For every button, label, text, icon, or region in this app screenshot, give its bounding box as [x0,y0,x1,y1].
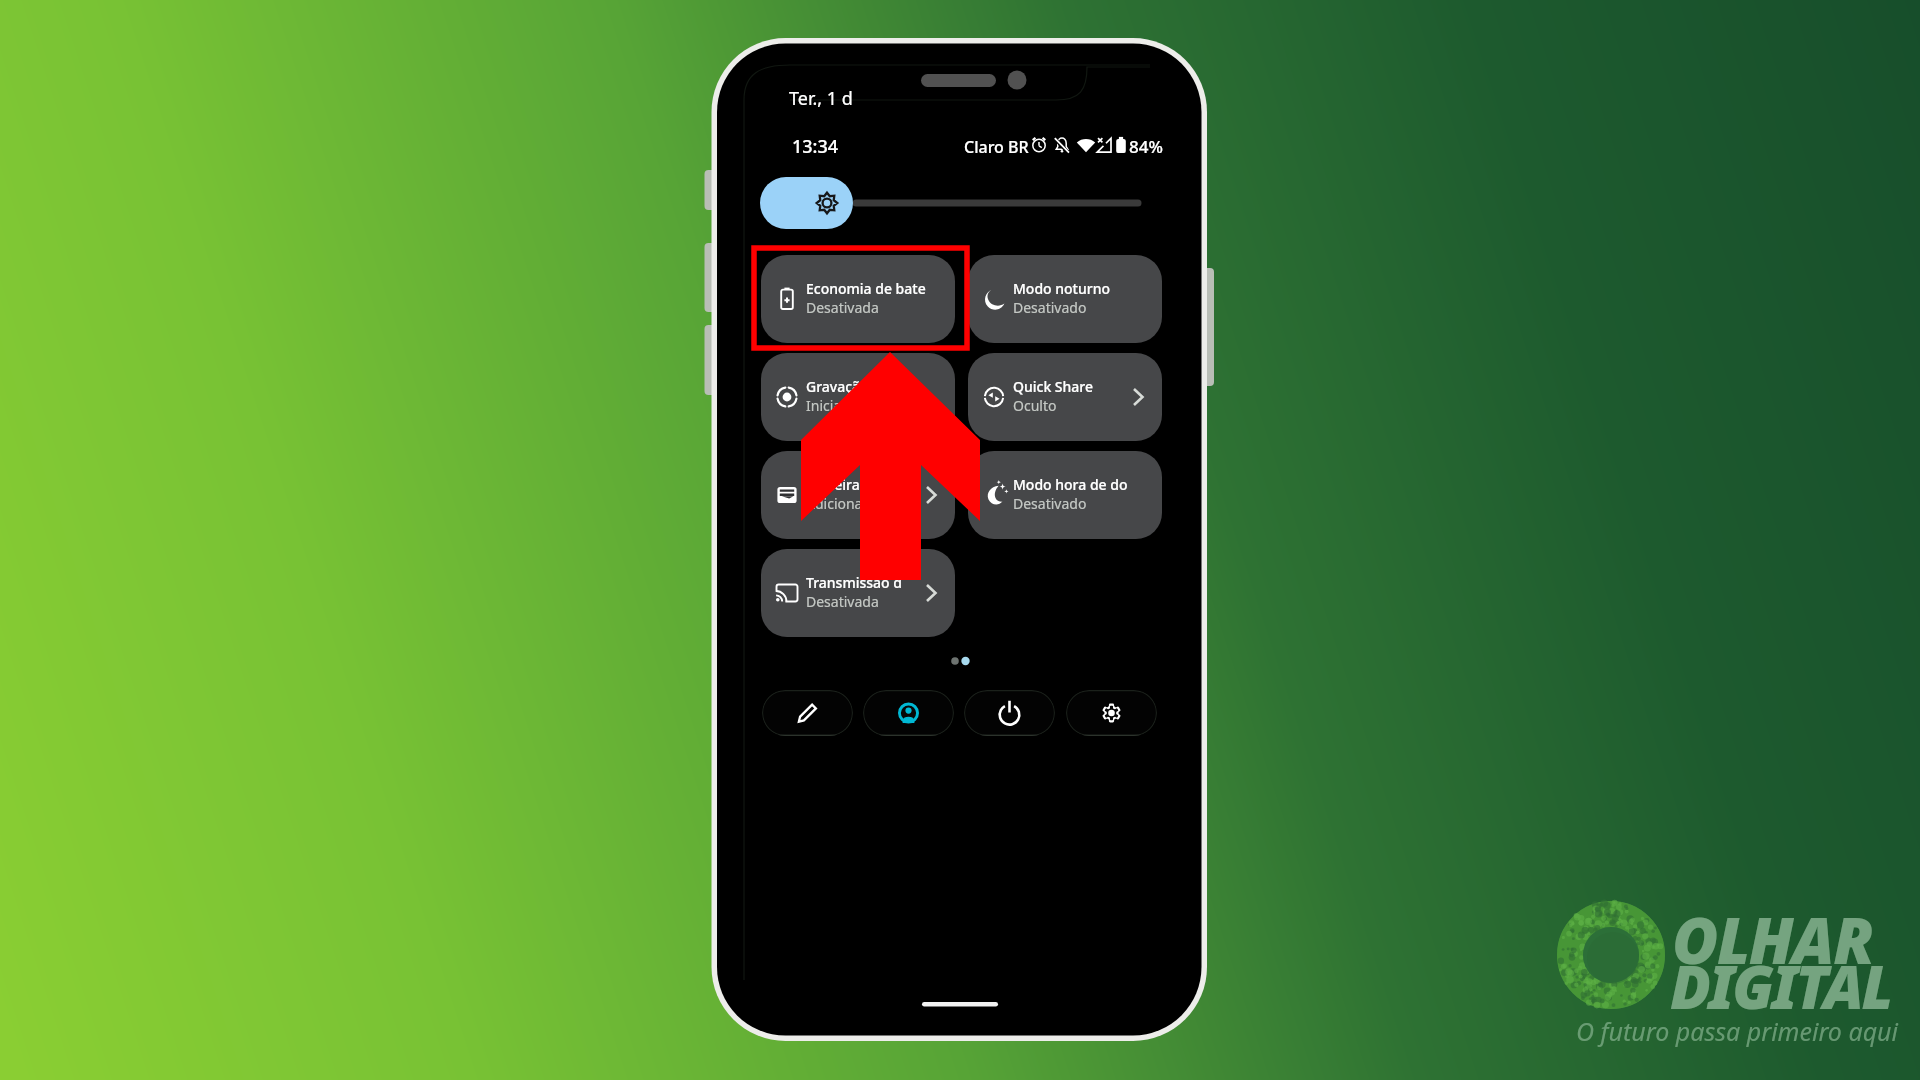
staticText: Quick Share [1013,377,1094,396]
staticText: Claro BR [964,136,1029,158]
staticText: OLHAR [1672,897,1873,983]
button[interactable]: Account [863,690,954,736]
button[interactable]: Modo noturno [968,255,1162,343]
staticText: Carteira [806,475,860,494]
staticText: Adicionar [806,494,869,513]
button[interactable]: Economia de bate [761,255,955,343]
staticText: Modo hora de do [1013,475,1128,494]
staticText: Modo noturno [1013,279,1111,298]
staticText: Gravação de [806,377,890,396]
staticText: 13:34 [792,134,839,159]
staticText: Economia de bate [806,279,926,298]
button[interactable]: Gravação de [761,353,955,441]
button[interactable]: Edit [762,690,853,736]
staticText: Desativada [806,298,879,317]
staticText: Transmissão d [806,573,902,592]
button[interactable]: Transmissão d [761,549,955,637]
button[interactable]: Carteira [761,451,955,539]
staticText: O futuro passa primeiro aqui [1576,1014,1899,1048]
staticText: Ter., 1 d [789,86,853,111]
staticText: 84% [1129,135,1163,158]
staticText: Desativado [1013,494,1087,513]
staticText: Desativada [806,592,879,611]
button[interactable]: Power [964,690,1055,736]
button[interactable]: Quick Share [968,353,1162,441]
staticText: DIGITAL [1670,945,1891,1027]
button[interactable]: Settings [1066,690,1157,736]
staticText: Iniciar [806,396,847,415]
staticText: Oculto [1013,396,1057,415]
button[interactable]: Brightness [760,177,1138,229]
button[interactable]: Modo hora de do [968,451,1162,539]
staticText: Desativado [1013,298,1087,317]
